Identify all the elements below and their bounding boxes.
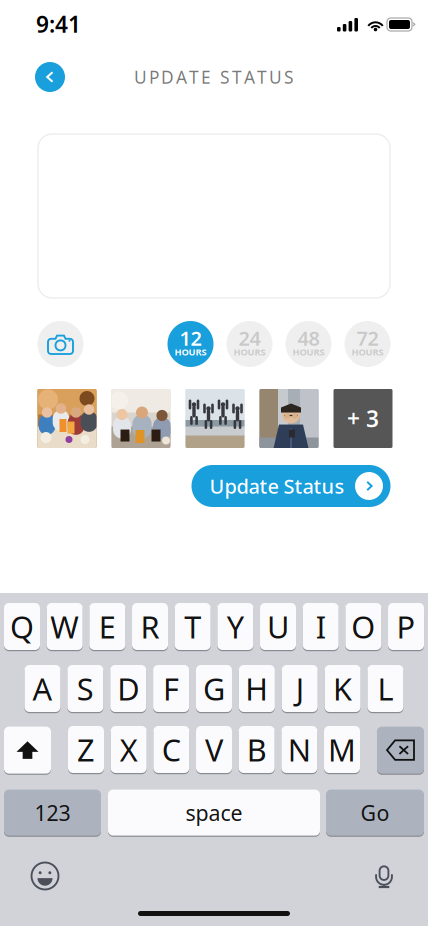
button[interactable]: Photo 4 (259, 389, 318, 448)
staticText: HOURS (233, 346, 265, 358)
button[interactable]: S (67, 664, 103, 713)
button[interactable]: F (153, 664, 189, 713)
button[interactable]: 24 (226, 321, 272, 367)
button[interactable]: Shift (4, 726, 51, 774)
button[interactable]: R (132, 602, 168, 651)
button[interactable]: Z (68, 725, 104, 774)
button[interactable]: L (367, 664, 403, 713)
staticText: K (333, 668, 352, 709)
button[interactable]: N (281, 725, 317, 774)
button[interactable]: U (260, 602, 296, 651)
button[interactable]: T (175, 602, 211, 651)
button[interactable]: V (196, 725, 232, 774)
staticText: E (99, 606, 116, 647)
staticText: X (120, 729, 138, 770)
staticText: + 3 (347, 403, 379, 433)
staticText: A (32, 668, 52, 709)
button[interactable]: 72 (344, 321, 390, 367)
staticText: F (163, 668, 179, 709)
button[interactable]: W (47, 602, 83, 651)
button[interactable]: C (153, 725, 189, 774)
button[interactable]: Dictation (361, 853, 407, 899)
button[interactable]: E (89, 602, 125, 651)
button[interactable]: B (239, 725, 275, 774)
button[interactable]: Emoji (22, 853, 68, 899)
staticText: P (396, 606, 415, 647)
button[interactable]: X (111, 725, 147, 774)
staticText: Z (77, 729, 95, 770)
button[interactable]: 48 (285, 321, 331, 367)
button[interactable]: H (239, 664, 275, 713)
staticText: U (267, 606, 289, 647)
staticText: D (117, 668, 139, 709)
staticText: Q (10, 606, 34, 647)
staticText: M (328, 729, 356, 770)
button[interactable]: Delete (377, 726, 424, 774)
staticText: C (162, 729, 181, 770)
button[interactable]: P (388, 602, 424, 651)
staticText: 72 (356, 325, 378, 351)
button[interactable]: 123 (4, 789, 101, 836)
staticText: W (50, 606, 79, 647)
staticText: 24 (238, 325, 260, 351)
staticText: 123 (34, 798, 70, 827)
staticText: G (203, 668, 225, 709)
button[interactable]: Y (217, 602, 253, 651)
button[interactable]: space (108, 789, 320, 836)
staticText: HOURS (292, 346, 324, 358)
button[interactable]: M (324, 725, 360, 774)
staticText: O (351, 606, 375, 647)
button[interactable]: Add photo (37, 321, 83, 367)
staticText: Go (360, 798, 389, 827)
button[interactable]: Photo 1 (37, 389, 96, 448)
staticText: Y (227, 606, 244, 647)
staticText: B (247, 729, 267, 770)
staticText: HOURS (174, 346, 206, 358)
button[interactable]: G (196, 664, 232, 713)
button[interactable]: Back (28, 55, 72, 99)
staticText: V (205, 729, 223, 770)
staticText: I (316, 606, 326, 647)
button[interactable]: O (345, 602, 381, 651)
staticText: space (185, 798, 242, 827)
staticText: J (296, 668, 304, 709)
button[interactable]: Update Status (191, 465, 390, 507)
staticText: 12 (179, 325, 201, 351)
button[interactable]: 3 more photos (333, 389, 392, 448)
staticText: S (77, 668, 94, 709)
staticText: Update Status (209, 473, 344, 499)
button[interactable]: D (110, 664, 146, 713)
button[interactable]: 12 (167, 321, 213, 367)
button[interactable]: I (303, 602, 339, 651)
button[interactable]: J (282, 664, 318, 713)
button[interactable]: A (24, 664, 60, 713)
staticText: HOURS (351, 346, 383, 358)
button[interactable]: K (325, 664, 361, 713)
staticText: L (377, 668, 393, 709)
staticText: N (288, 729, 311, 770)
staticText: R (140, 606, 159, 647)
staticText: H (245, 668, 268, 709)
button[interactable]: Go (326, 789, 424, 836)
button[interactable]: Photo 2 (111, 389, 170, 448)
button[interactable]: Photo 3 (185, 389, 244, 448)
staticText: 48 (297, 325, 319, 351)
staticText: T (184, 606, 201, 647)
staticText: 9:41 (36, 9, 81, 39)
button[interactable]: Q (4, 602, 40, 651)
staticText: U P D A T E S T A T U S (134, 65, 294, 88)
